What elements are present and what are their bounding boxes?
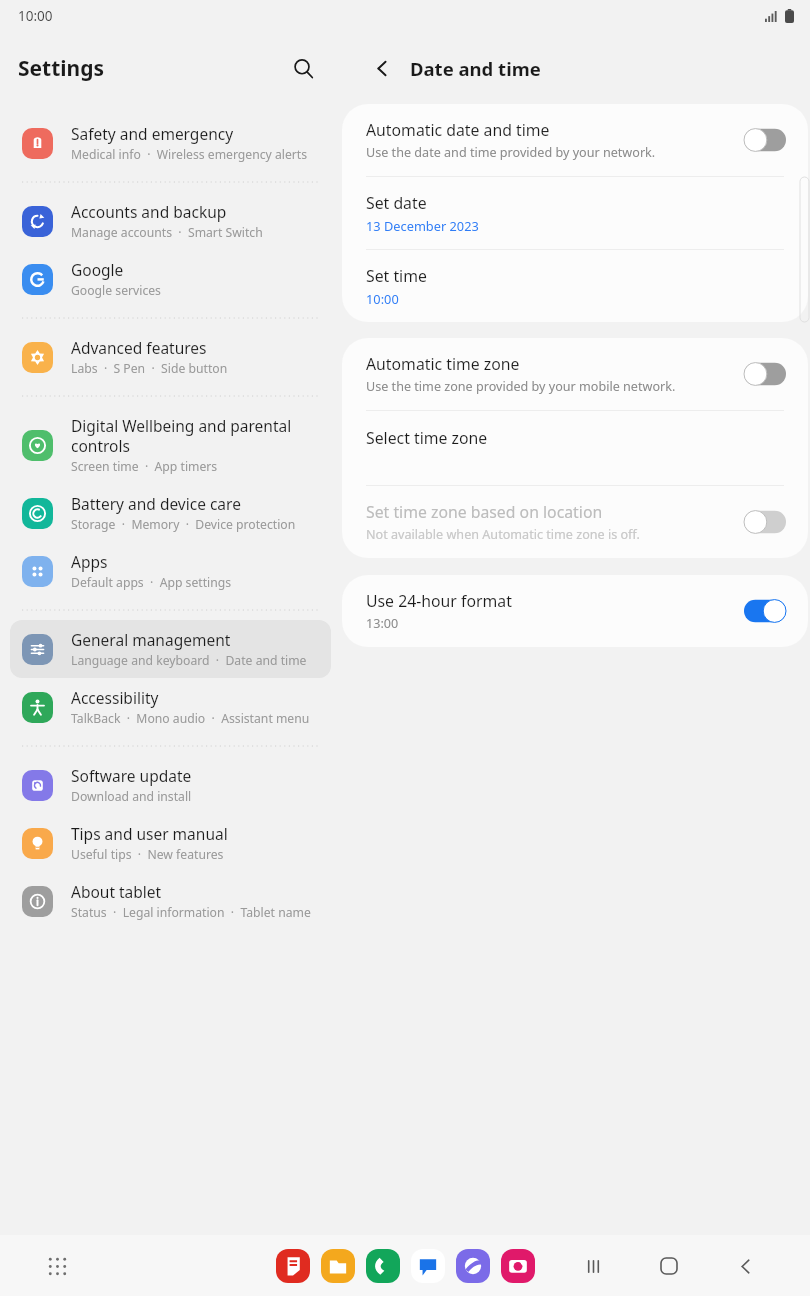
button[interactable]: General management	[10, 620, 331, 678]
staticText: Not available when Automatic time zone i…	[366, 526, 640, 543]
button[interactable]: Camera	[501, 1249, 535, 1283]
button[interactable]: Set time zone based on location	[342, 486, 808, 558]
staticText: 10:00	[366, 290, 399, 307]
button[interactable]: Automatic time zone	[342, 338, 808, 410]
staticText: Labs · S Pen · Side button	[71, 360, 228, 377]
button[interactable]: Tips and user manual	[10, 814, 331, 872]
button[interactable]: Apps	[10, 542, 331, 600]
staticText: Software update	[71, 765, 192, 786]
button[interactable]: Advanced features	[10, 328, 331, 386]
button[interactable]: About tablet	[10, 872, 331, 930]
button[interactable]: Internet	[456, 1249, 490, 1283]
button[interactable]: Samsung Notes	[276, 1249, 310, 1283]
staticText: Use the date and time provided by your n…	[366, 144, 656, 161]
staticText: Date and time	[410, 56, 541, 81]
button[interactable]	[744, 361, 786, 387]
button[interactable]: Use 24-hour format	[342, 575, 808, 647]
staticText: Language and keyboard · Date and time	[71, 652, 307, 669]
button[interactable]: Back	[728, 1249, 762, 1283]
button[interactable]: Set time	[342, 250, 808, 322]
staticText: Download and install	[71, 788, 192, 805]
staticText: Screen time · App timers	[71, 458, 218, 475]
staticText: 13:00	[366, 615, 399, 632]
button[interactable]: Recents	[576, 1249, 610, 1283]
button[interactable]: Search	[283, 48, 323, 88]
staticText: Set date	[366, 192, 427, 214]
staticText: Battery and device care	[71, 493, 241, 514]
staticText: TalkBack · Mono audio · Assistant menu	[71, 710, 310, 727]
staticText: Storage · Memory · Device protection	[71, 516, 296, 533]
staticText: Google services	[71, 282, 161, 299]
staticText: Set time	[366, 265, 427, 287]
staticText: Settings	[18, 54, 283, 83]
staticText: Default apps · App settings	[71, 574, 232, 591]
button[interactable]: Select time zone	[342, 411, 808, 485]
staticText: Set time zone based on location	[366, 501, 603, 523]
button[interactable]: Home	[652, 1249, 686, 1283]
button[interactable]: Google	[10, 250, 331, 308]
button[interactable]: Back	[363, 49, 401, 87]
staticText: Manage accounts · Smart Switch	[71, 224, 263, 241]
button[interactable]: Software update	[10, 756, 331, 814]
staticText: Apps	[71, 551, 108, 572]
button[interactable]: Messages	[411, 1249, 445, 1283]
staticText: Tips and user manual	[71, 823, 228, 844]
staticText: Accounts and backup	[71, 201, 227, 222]
button[interactable]	[744, 598, 786, 624]
staticText: Safety and emergency	[71, 123, 234, 144]
staticText: Advanced features	[71, 337, 207, 358]
staticText: General management	[71, 629, 231, 650]
button[interactable]: All apps	[40, 1249, 74, 1283]
staticText: Automatic date and time	[366, 119, 550, 141]
button[interactable]: Battery and device care	[10, 484, 331, 542]
button[interactable]: Set date	[342, 177, 808, 249]
staticText: Google	[71, 259, 124, 280]
button[interactable]: Safety and emergency	[10, 114, 331, 172]
staticText: Select time zone	[366, 427, 488, 449]
staticText: Digital Wellbeing and parental controls	[71, 415, 317, 456]
staticText: Status · Legal information · Tablet name	[71, 904, 311, 921]
staticText: Useful tips · New features	[71, 846, 224, 863]
button[interactable]: Automatic date and time	[342, 104, 808, 176]
staticText: Accessibility	[71, 687, 159, 708]
staticText: Medical info · Wireless emergency alerts	[71, 146, 308, 163]
button[interactable]: Phone	[366, 1249, 400, 1283]
staticText: Use the time zone provided by your mobil…	[366, 378, 676, 395]
staticText: Use 24-hour format	[366, 590, 512, 612]
button[interactable]: Digital Wellbeing and parental controls	[10, 406, 331, 484]
staticText: Automatic time zone	[366, 353, 520, 375]
button[interactable]: My Files	[321, 1249, 355, 1283]
button[interactable]: Accounts and backup	[10, 192, 331, 250]
staticText: About tablet	[71, 881, 162, 902]
button[interactable]: Accessibility	[10, 678, 331, 736]
staticText: 13 December 2023	[366, 217, 479, 234]
button[interactable]	[744, 509, 786, 535]
staticText: 10:00	[18, 7, 53, 25]
button[interactable]	[744, 127, 786, 153]
